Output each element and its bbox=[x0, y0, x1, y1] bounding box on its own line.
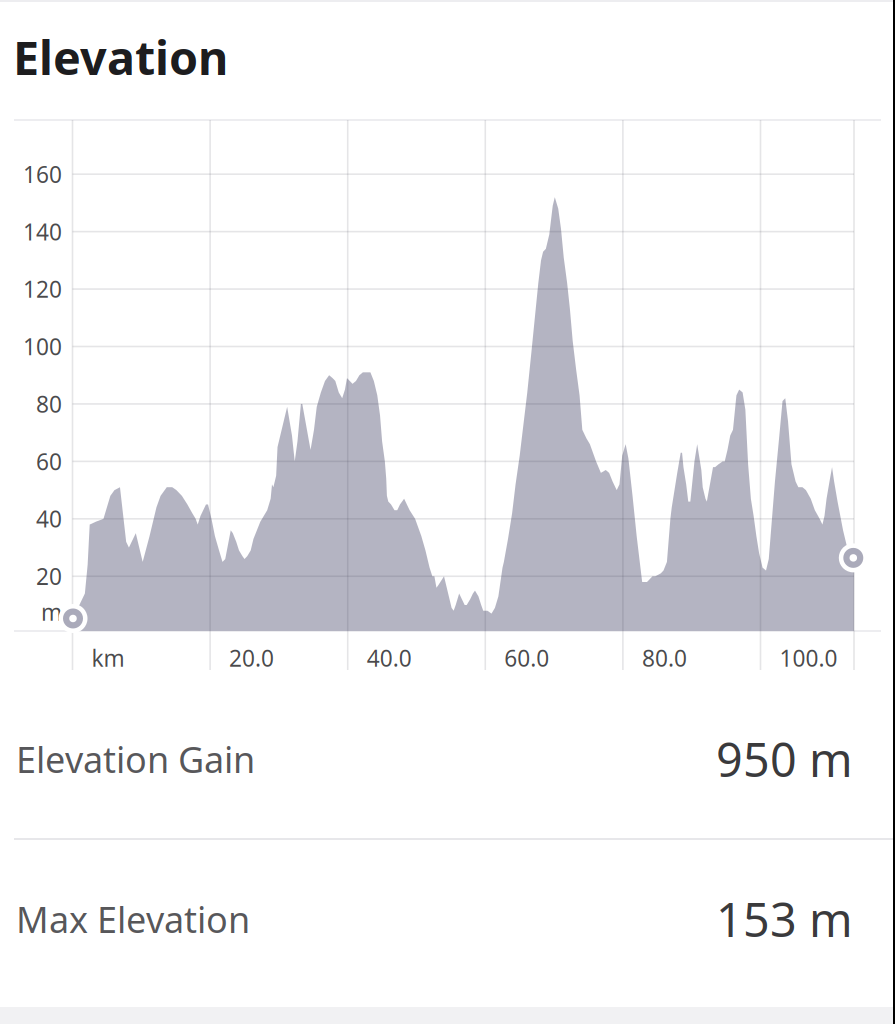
staticText: 80 bbox=[36, 389, 62, 419]
staticText: Elevation Gain bbox=[16, 735, 255, 783]
staticText: 160 bbox=[23, 159, 62, 189]
staticText: 140 bbox=[23, 217, 62, 247]
staticText: Elevation bbox=[13, 26, 228, 88]
staticText: 100 bbox=[23, 331, 62, 361]
staticText: 80.0 bbox=[642, 643, 687, 673]
staticText: 153 m bbox=[716, 888, 853, 950]
staticText: 60.0 bbox=[504, 643, 549, 673]
staticText: 20 bbox=[36, 561, 62, 591]
staticText: 120 bbox=[23, 274, 62, 304]
button[interactable]: Elevation Gain bbox=[0, 700, 895, 818]
staticText: 20.0 bbox=[229, 643, 274, 673]
staticText: 100.0 bbox=[779, 643, 837, 673]
staticText: km bbox=[91, 643, 124, 673]
staticText: 950 m bbox=[716, 728, 853, 790]
staticText: Max Elevation bbox=[16, 895, 250, 943]
staticText: 40.0 bbox=[367, 643, 412, 673]
staticText: 40 bbox=[36, 504, 62, 534]
staticText: m bbox=[41, 597, 62, 627]
button[interactable]: Max Elevation bbox=[0, 860, 895, 978]
staticText: 60 bbox=[36, 446, 62, 476]
